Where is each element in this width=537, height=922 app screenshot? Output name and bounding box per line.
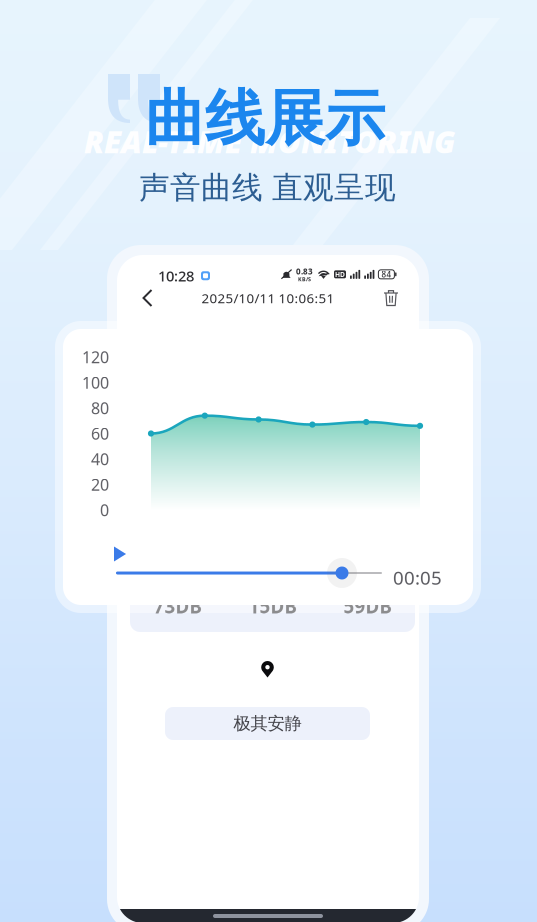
staticText: 0: [100, 499, 109, 521]
button[interactable]: Delete: [373, 282, 409, 314]
button[interactable]: 极其安静: [165, 707, 370, 740]
staticText: 20: [91, 474, 109, 495]
staticText: KB/S: [298, 276, 311, 283]
button[interactable]: Play: [108, 543, 132, 565]
staticText: 73DB: [153, 594, 201, 618]
staticText: 声音曲线 直观呈现: [139, 169, 396, 207]
staticText: 极其安静: [233, 713, 301, 734]
staticText: 00:05: [393, 565, 442, 590]
staticText: 10:28: [158, 266, 194, 285]
staticText: 0.83: [296, 266, 313, 277]
staticText: REAL-TIME MONITORING: [84, 121, 455, 162]
staticText: 59DB: [343, 594, 391, 618]
staticText: 2025/10/11 10:06:51: [201, 289, 334, 307]
button[interactable]: Back: [129, 282, 167, 314]
staticText: 曲线展示: [145, 82, 385, 156]
staticText: 60: [91, 423, 109, 444]
staticText: 100: [82, 372, 109, 393]
staticText: 84: [381, 269, 391, 280]
staticText: HD: [335, 270, 345, 279]
staticText: 15DB: [248, 594, 296, 618]
staticText: 40: [91, 448, 109, 470]
staticText: 120: [82, 346, 109, 368]
staticText: 80: [91, 397, 109, 419]
